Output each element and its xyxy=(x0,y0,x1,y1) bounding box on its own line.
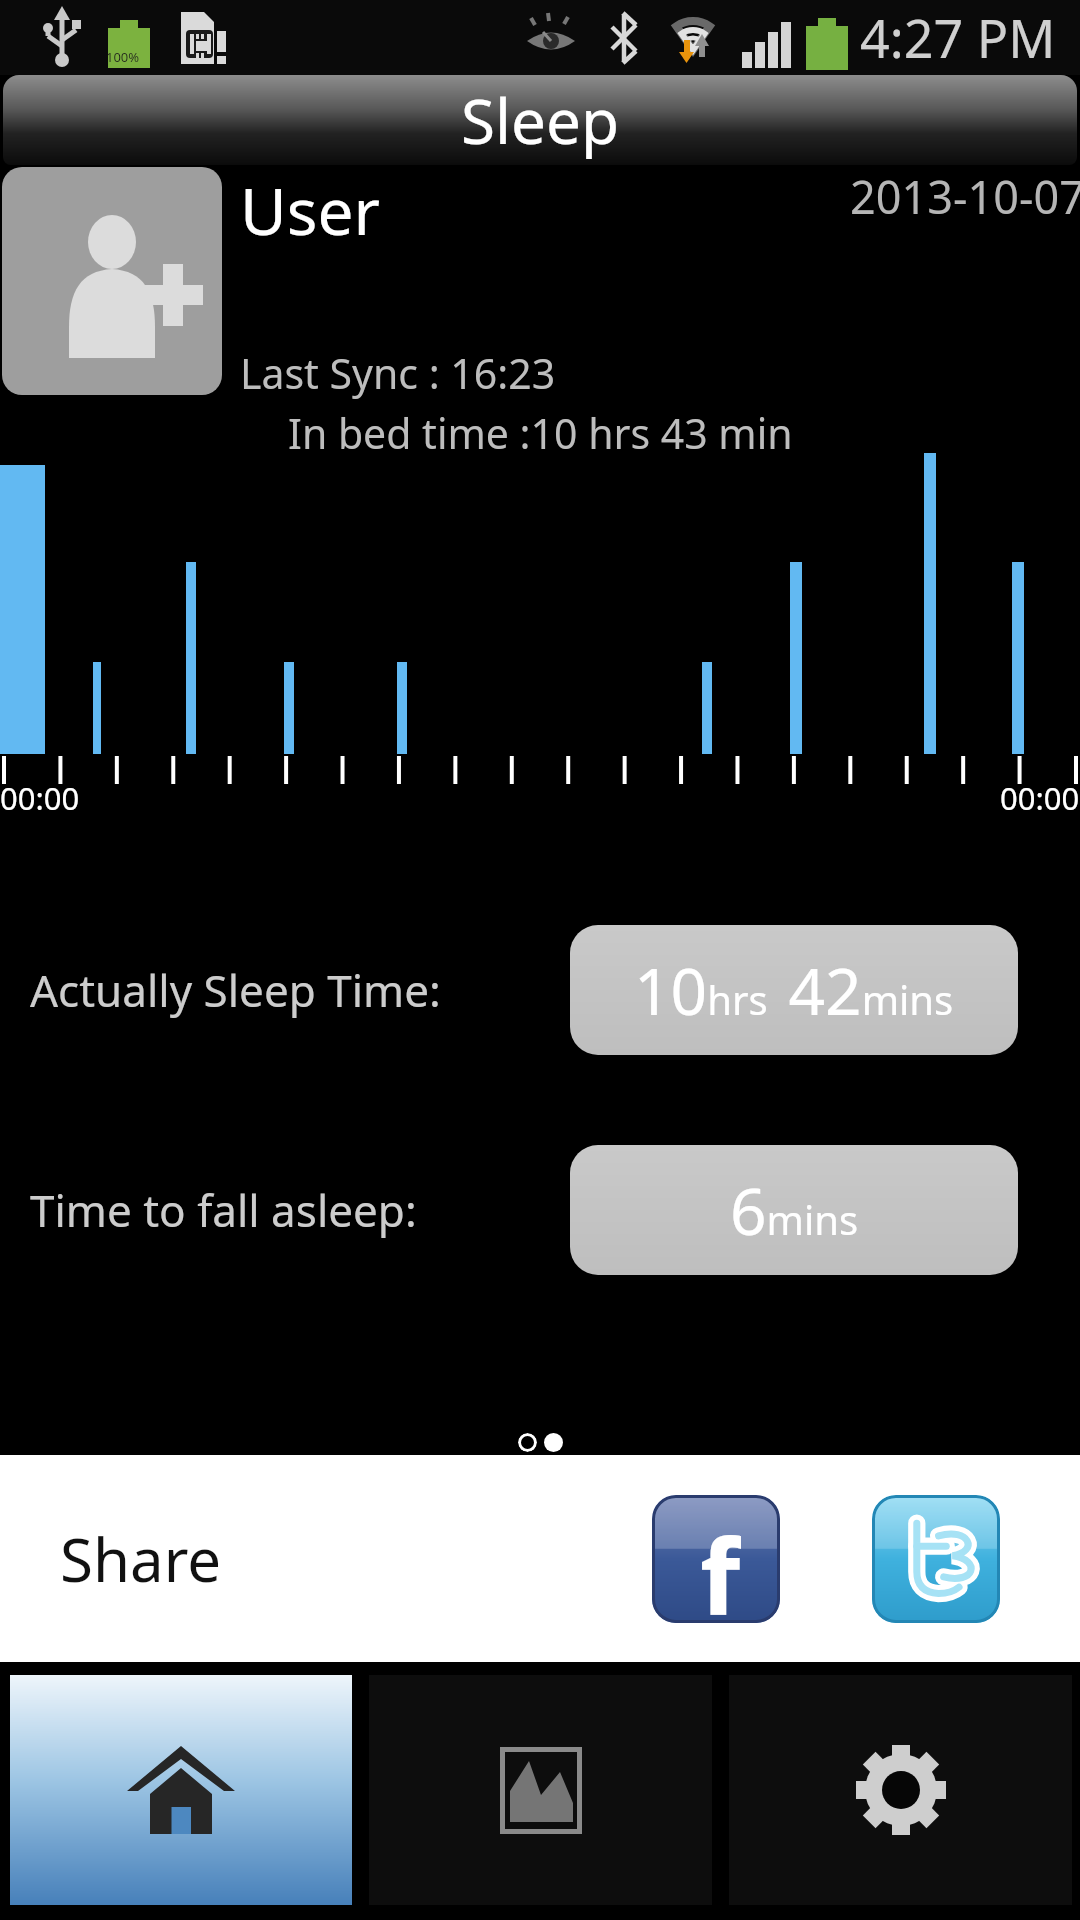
staticText: Time to fall asleep: xyxy=(30,1180,417,1240)
staticText: 4:27 PM xyxy=(860,2,1056,73)
staticText: f xyxy=(700,1503,741,1623)
staticText: 2013-10-07 xyxy=(850,166,1080,227)
staticText: Last Sync : 16:23 xyxy=(240,345,556,401)
staticText: 100% xyxy=(106,48,140,66)
staticText: In bed time :10 hrs 43 min xyxy=(288,405,793,461)
button[interactable] xyxy=(2,167,222,395)
staticText: 10hrs 42mins xyxy=(634,947,954,1034)
staticText: Share xyxy=(60,1518,222,1600)
staticText: 6mins xyxy=(730,1167,859,1254)
button[interactable] xyxy=(729,1675,1072,1905)
staticText: 00:00 xyxy=(1000,777,1080,819)
button[interactable] xyxy=(10,1675,352,1905)
button[interactable]: 6mins xyxy=(570,1145,1018,1275)
staticText: Actually Sleep Time: xyxy=(30,960,441,1020)
button[interactable] xyxy=(369,1675,712,1905)
staticText: User xyxy=(240,167,380,254)
button[interactable]: 10hrs 42mins xyxy=(570,925,1018,1055)
staticText: 00:00 xyxy=(0,777,80,819)
button[interactable]: f xyxy=(652,1495,780,1623)
button[interactable] xyxy=(872,1495,1000,1623)
staticText: Sleep xyxy=(461,78,620,162)
